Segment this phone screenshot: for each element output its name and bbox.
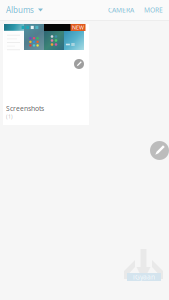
staticText: iGyaan [133, 273, 155, 281]
staticText: (1) [6, 113, 13, 120]
staticText: CAMERA [108, 6, 134, 14]
staticText: MORE [144, 6, 163, 14]
button[interactable]: Edit album [74, 59, 84, 69]
button[interactable]: NEW [3, 24, 89, 125]
staticText: Screenshots [6, 104, 44, 113]
button[interactable]: CAMERA [103, 0, 139, 20]
staticText: Albums [6, 5, 34, 15]
button[interactable]: MORE [139, 0, 169, 20]
button[interactable]: Edit [150, 141, 169, 160]
staticText: NEW [72, 24, 84, 31]
button[interactable]: Albums [0, 0, 49, 20]
